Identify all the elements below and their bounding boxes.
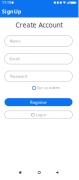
staticText: 11:19 [2,0,11,5]
button[interactable]: Recents [15,167,25,177]
button[interactable]: Log in [4,111,72,119]
staticText: Create Account [15,21,62,29]
button[interactable]: Sign up as admin [32,85,72,91]
button[interactable]: Email [4,53,72,64]
button[interactable]: Back [52,167,62,177]
staticText: Password [9,74,26,79]
button[interactable]: Home [34,167,44,177]
staticText: Email [9,56,19,61]
button[interactable]: Password [4,71,72,82]
staticText: Register [30,99,47,105]
staticText: Sign up as admin [37,86,60,90]
staticText: Sign Up [2,8,21,15]
button[interactable]: Name [4,36,72,46]
staticText: Name [9,38,20,44]
staticText: Log in [36,112,46,117]
button[interactable]: Register [4,98,72,106]
